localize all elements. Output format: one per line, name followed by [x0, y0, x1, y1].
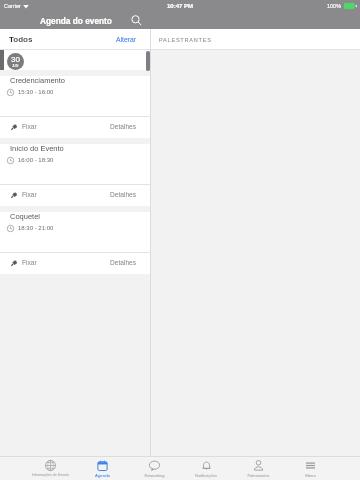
button[interactable]: Networking	[128, 457, 180, 480]
staticText: Fixar	[22, 191, 37, 198]
staticText: 30	[11, 55, 20, 64]
staticText: Credenciamento	[10, 76, 66, 84]
staticText: Fixar	[22, 259, 37, 266]
staticText: Palestrantes	[247, 473, 270, 477]
button[interactable]: Detalhes	[110, 120, 137, 133]
button[interactable]: Search	[129, 13, 144, 28]
staticText: 18:30 - 21:00	[18, 225, 54, 232]
staticText: Detalhes	[110, 123, 137, 130]
button[interactable]: Detalhes	[110, 188, 137, 201]
button[interactable]: Fixar	[11, 188, 37, 201]
button[interactable]: Menu	[284, 457, 336, 480]
button[interactable]: Fixar	[11, 120, 37, 133]
staticText: Início do Evento	[10, 144, 64, 152]
staticText: Todos	[9, 35, 33, 44]
button[interactable]: Alterar	[114, 34, 139, 46]
staticText: 10:47 PM	[167, 3, 194, 10]
staticText: 15:30 - 16:00	[18, 89, 54, 96]
staticText: 100%	[327, 3, 342, 9]
button[interactable]: Fixar	[11, 256, 37, 269]
staticText: Menu	[305, 473, 316, 478]
button[interactable]: Notificações	[180, 457, 232, 480]
staticText: 16:00 - 18:30	[18, 157, 54, 164]
staticText: Notificações	[195, 473, 217, 477]
staticText: Agenda do evento	[40, 16, 112, 25]
staticText: JUN	[12, 64, 19, 68]
staticText: Fixar	[22, 123, 37, 130]
staticText: Networking	[144, 473, 165, 477]
button[interactable]: Palestrantes	[232, 457, 284, 480]
staticText: Carrier	[4, 3, 21, 9]
staticText: Informações do Evento	[32, 473, 69, 477]
button[interactable]: Agenda	[76, 457, 128, 480]
staticText: Detalhes	[110, 259, 137, 266]
button[interactable]: Informações do Evento	[24, 457, 76, 480]
staticText: PALESTRANTES	[159, 37, 212, 43]
staticText: Agenda	[95, 473, 110, 478]
staticText: Alterar	[116, 36, 137, 44]
button[interactable]: Detalhes	[110, 256, 137, 269]
staticText: Coquetel	[10, 212, 41, 220]
staticText: Detalhes	[110, 191, 137, 198]
